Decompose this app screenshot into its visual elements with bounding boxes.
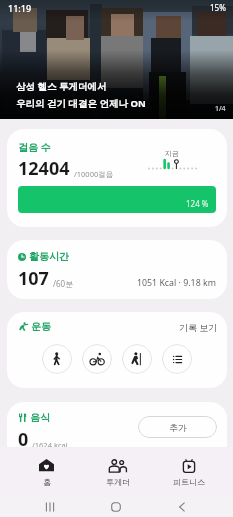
- staticText: 걸음 수: [18, 140, 51, 154]
- staticText: 추가: [169, 422, 187, 433]
- staticText: 1/4: [215, 104, 226, 114]
- staticText: 107: [18, 266, 49, 291]
- staticText: 11:19: [8, 2, 32, 14]
- button[interactable]: Home: [11, 452, 82, 492]
- staticText: /1624 kcal: [32, 440, 68, 450]
- other: Fitness: [182, 459, 196, 473]
- staticText: 투게더: [106, 477, 130, 487]
- button[interactable]: Walk: [42, 344, 72, 374]
- staticText: 기록 보기: [179, 321, 218, 333]
- button[interactable]: Hike: [122, 344, 152, 374]
- staticText: 피트니스: [173, 477, 205, 487]
- staticText: 운동: [31, 320, 51, 333]
- button[interactable]: Recent apps: [17, 502, 83, 512]
- staticText: 활동시간: [29, 250, 69, 263]
- button[interactable]: Together: [82, 453, 153, 492]
- button[interactable]: 활동시간: [7, 240, 227, 299]
- button[interactable]: Back: [149, 502, 215, 512]
- button[interactable]: 기록 보기: [179, 321, 218, 333]
- button[interactable]: Home: [83, 502, 149, 512]
- button[interactable]: Cycle: [82, 344, 112, 374]
- staticText: 음식: [30, 411, 50, 424]
- staticText: 1051 Kcal · 9.18 km: [137, 277, 216, 289]
- staticText: /10000걸음: [74, 169, 114, 179]
- staticText: 우리의 걷기 대결은 언제나 ON: [16, 97, 146, 110]
- button[interactable]: 추가: [138, 416, 217, 438]
- button[interactable]: 걸음 수: [7, 129, 227, 227]
- other: Together: [108, 459, 127, 473]
- staticText: 15%: [210, 2, 226, 13]
- staticText: 홈: [43, 477, 51, 487]
- other: Home: [39, 458, 54, 473]
- staticText: 삼성 헬스 투게더에서: [16, 80, 107, 93]
- staticText: /60분: [53, 278, 74, 289]
- button[interactable]: More: [162, 344, 192, 374]
- button[interactable]: 음식: [7, 402, 227, 462]
- staticText: 12404: [18, 156, 70, 181]
- staticText: 0: [18, 427, 29, 452]
- button[interactable]: Fitness: [153, 453, 224, 492]
- staticText: 124 %: [186, 198, 209, 209]
- staticText: 지금: [165, 149, 179, 158]
